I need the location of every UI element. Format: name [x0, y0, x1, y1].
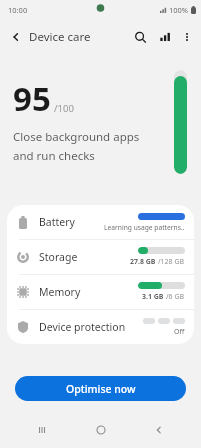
button[interactable]: More options: [176, 26, 198, 48]
staticText: Optimise now: [66, 382, 136, 396]
button[interactable]: Usage statistics: [152, 25, 176, 49]
button[interactable]: Memory: [7, 275, 194, 309]
staticText: Device care: [29, 29, 91, 45]
staticText: Device protection: [39, 320, 126, 334]
button[interactable]: Optimise now: [15, 376, 186, 401]
button[interactable]: Home: [84, 416, 118, 444]
button[interactable]: Back: [142, 416, 176, 444]
staticText: Close background apps: [13, 129, 140, 145]
button[interactable]: Battery: [7, 205, 194, 239]
staticText: and run checks: [13, 148, 95, 164]
staticText: Memory: [39, 285, 81, 299]
staticText: Off: [174, 327, 185, 337]
staticText: 95: [13, 76, 51, 121]
staticText: Learning usage patterns..: [104, 223, 185, 232]
staticText: /128 GB: [158, 257, 185, 267]
button[interactable]: Search: [128, 25, 152, 49]
staticText: Battery: [39, 215, 75, 229]
button[interactable]: Back: [3, 24, 29, 50]
staticText: 100%: [169, 5, 189, 15]
staticText: 3.1 GB: [142, 292, 166, 302]
staticText: Storage: [39, 250, 78, 264]
button[interactable]: Storage: [7, 240, 194, 274]
button[interactable]: Device protection: [7, 310, 194, 344]
button[interactable]: Recent apps: [25, 416, 59, 444]
staticText: 27.8 GB: [130, 257, 158, 267]
staticText: /100: [54, 102, 74, 115]
staticText: /6 GB: [166, 292, 185, 302]
staticText: 10:00: [8, 5, 28, 15]
